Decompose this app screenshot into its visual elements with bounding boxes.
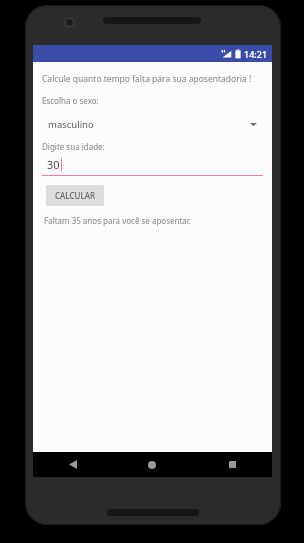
button[interactable]: Recent apps — [192, 452, 272, 477]
button[interactable]: masculino — [42, 114, 263, 134]
staticText: Faltam 35 anos para você se aposentar. — [44, 215, 192, 226]
button[interactable]: 30 — [42, 157, 263, 176]
staticText: masculino — [48, 118, 94, 131]
button[interactable]: Back — [33, 452, 112, 477]
staticText: Calcule quanto tempo falta para sua apos… — [42, 73, 252, 85]
staticText: 30 — [47, 157, 60, 172]
button[interactable]: Home — [112, 452, 192, 477]
button[interactable]: CALCULAR — [46, 185, 104, 206]
staticText: Digite sua idade: — [42, 141, 105, 152]
staticText: CALCULAR — [55, 190, 95, 201]
staticText: Escolha o sexo: — [42, 95, 99, 106]
staticText: 14:21 — [244, 48, 268, 60]
